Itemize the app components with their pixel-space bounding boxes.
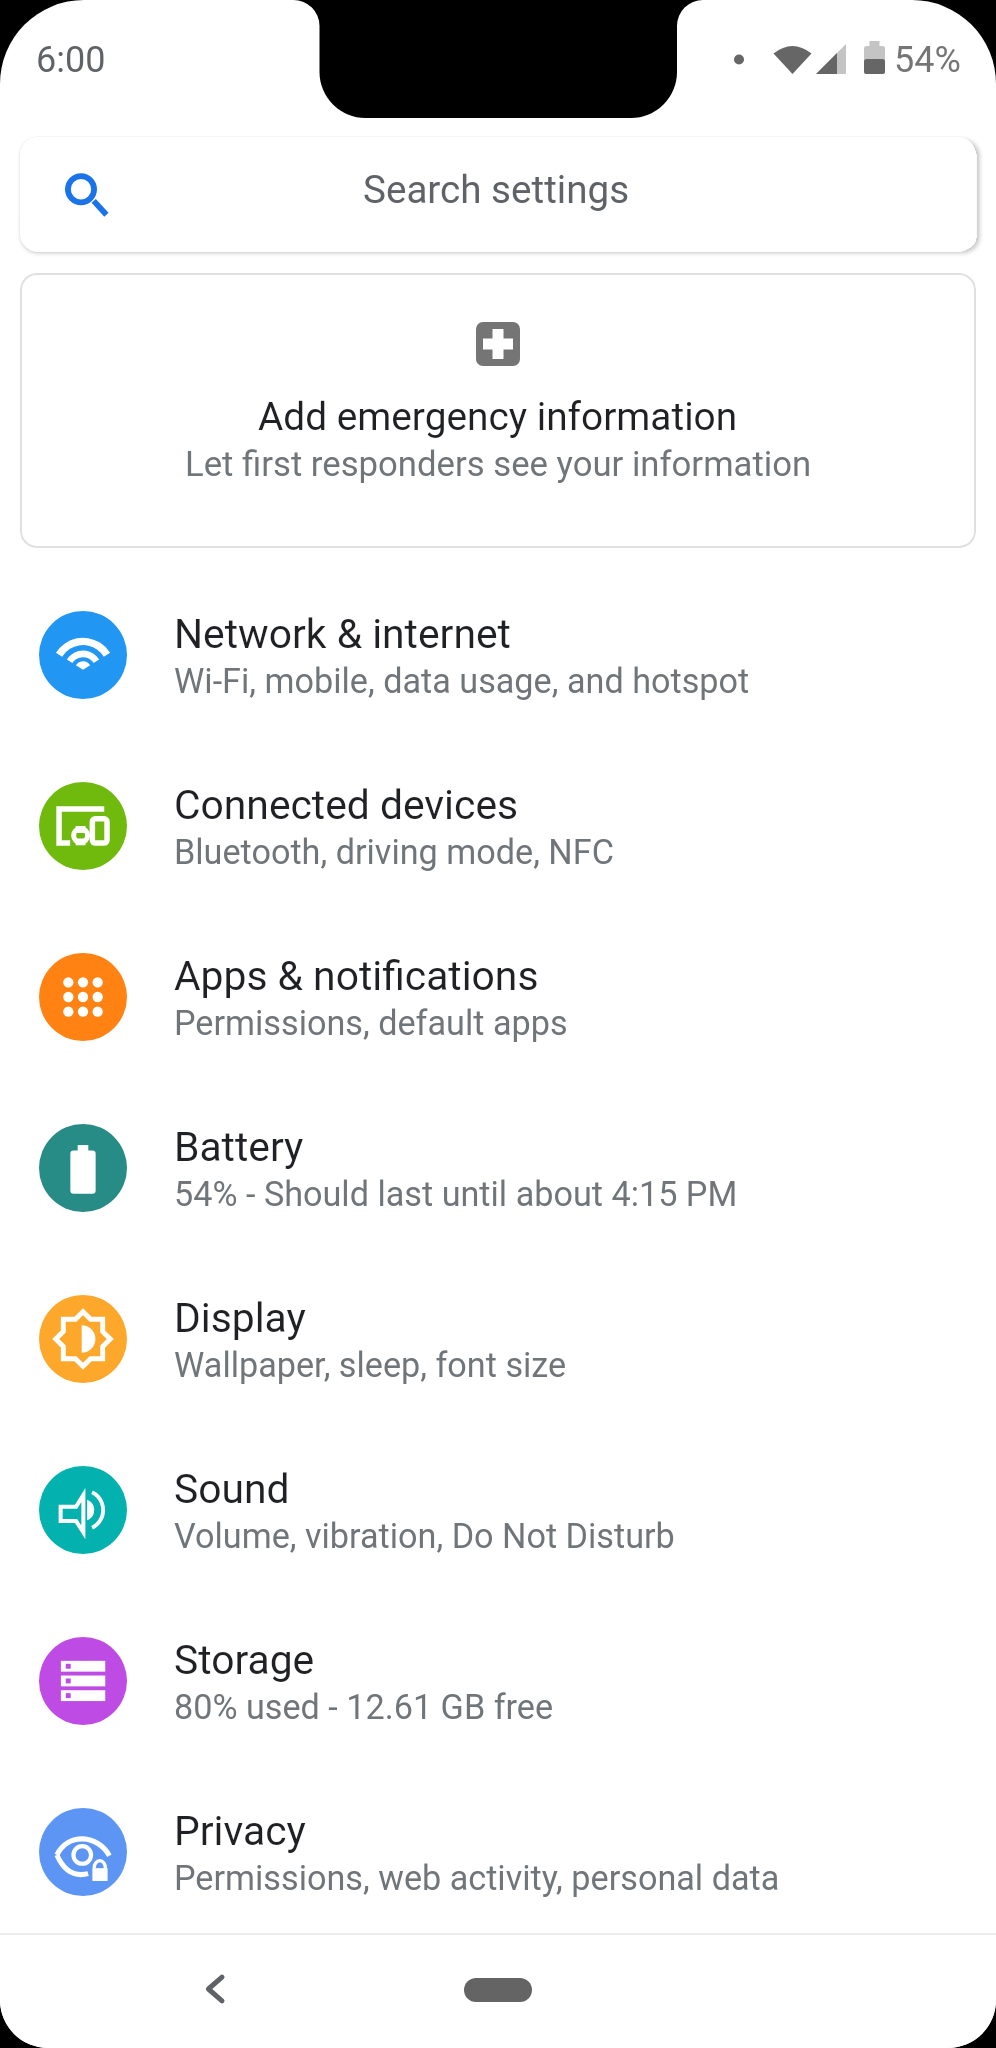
staticText: 54% bbox=[894, 39, 961, 81]
staticText: Connected devices bbox=[174, 781, 519, 829]
staticText: Battery bbox=[174, 1123, 304, 1171]
staticText: Add emergency information bbox=[258, 394, 738, 439]
button[interactable]: Home bbox=[464, 1978, 532, 2002]
button[interactable]: Back bbox=[176, 1949, 256, 2029]
staticText: Apps & notifications bbox=[174, 952, 539, 1000]
button[interactable]: Connected devices bbox=[0, 740, 996, 911]
button[interactable]: Storage bbox=[0, 1595, 996, 1766]
button[interactable]: Privacy bbox=[0, 1766, 996, 1937]
button[interactable]: Sound bbox=[0, 1424, 996, 1595]
button[interactable]: Battery bbox=[0, 1082, 996, 1253]
staticText: Wi-Fi, mobile, data usage, and hotspot bbox=[174, 661, 750, 701]
button[interactable]: Apps & notifications bbox=[0, 911, 996, 1082]
staticText: Privacy bbox=[174, 1807, 306, 1855]
button[interactable]: Search settings bbox=[20, 137, 976, 252]
staticText: 80% used - 12.61 GB free bbox=[174, 1687, 554, 1727]
staticText: Storage bbox=[174, 1636, 315, 1684]
button[interactable]: Display bbox=[0, 1253, 996, 1424]
button[interactable]: Network & internet bbox=[0, 569, 996, 740]
staticText: Display bbox=[174, 1294, 306, 1342]
staticText: Volume, vibration, Do Not Disturb bbox=[174, 1516, 675, 1556]
staticText: Permissions, default apps bbox=[174, 1003, 568, 1043]
staticText: Search settings bbox=[363, 167, 630, 212]
staticText: Let first responders see your informatio… bbox=[185, 444, 812, 485]
staticText: Network & internet bbox=[174, 610, 511, 658]
staticText: Wallpaper, sleep, font size bbox=[174, 1345, 567, 1385]
staticText: Bluetooth, driving mode, NFC bbox=[174, 832, 614, 872]
button[interactable]: Add emergency information bbox=[20, 273, 976, 548]
staticText: Sound bbox=[174, 1465, 290, 1513]
staticText: 6:00 bbox=[36, 39, 106, 81]
staticText: Permissions, web activity, personal data bbox=[174, 1858, 780, 1898]
staticText: 54% - Should last until about 4:15 PM bbox=[174, 1174, 738, 1214]
